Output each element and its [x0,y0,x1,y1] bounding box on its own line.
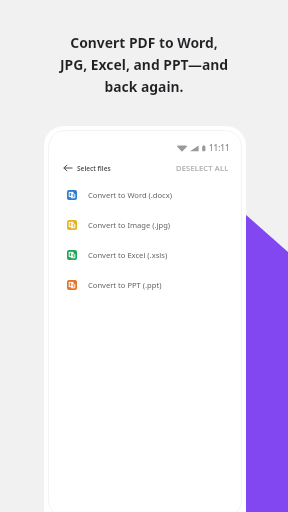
button[interactable]: Convert to Word (.docx) [44,180,246,210]
button[interactable]: Convert to Excel (.xsls) [44,240,246,270]
button[interactable]: Convert to PPT (.ppt) [44,270,246,300]
button[interactable]: Convert to Image (.jpg) [44,210,246,240]
staticText: Convert to Word (.docx) [88,190,173,200]
staticText: Select files [77,164,111,173]
button[interactable]: DESELECT ALL [176,163,229,173]
staticText: Convert to Image (.jpg) [88,220,171,230]
staticText: Convert PDF to Word, JPG, Excel, and PPT… [0,33,288,96]
staticText: Convert to Excel (.xsls) [88,250,168,260]
other: Wi-Fi, signal and battery status [177,144,207,152]
staticText: DESELECT ALL [176,163,229,173]
staticText: Convert to PPT (.ppt) [88,280,162,290]
button[interactable]: Back [63,163,73,173]
staticText: 11:11 [209,142,230,153]
